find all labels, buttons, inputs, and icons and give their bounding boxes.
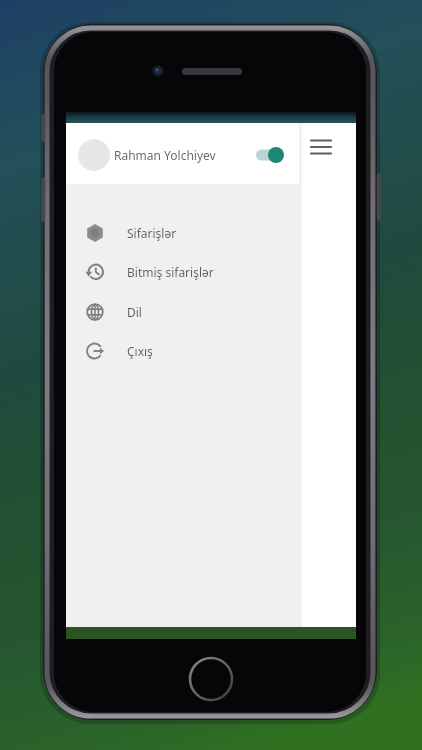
button[interactable]	[306, 132, 336, 162]
staticText: Dil	[127, 304, 142, 320]
staticText: Rahman Yolchiyev	[114, 147, 216, 163]
staticText: Sifarişlər	[127, 225, 177, 241]
button[interactable]: Sifarişlər	[86, 218, 286, 248]
button[interactable]: Bitmiş sifarişlər	[86, 257, 286, 287]
staticText: Çıxış	[127, 343, 153, 359]
button[interactable]	[78, 139, 110, 171]
button[interactable]	[254, 145, 284, 165]
button[interactable]: Dil	[86, 297, 286, 327]
staticText: Bitmiş sifarişlər	[127, 264, 214, 280]
button[interactable]: Çıxış	[86, 336, 286, 366]
